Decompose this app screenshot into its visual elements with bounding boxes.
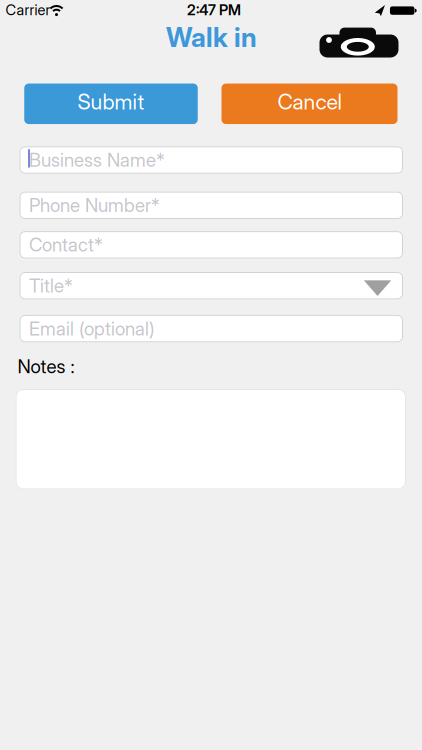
staticText: Carrier (5, 1, 50, 19)
staticText: 2:47 PM (187, 1, 241, 19)
staticText: Email (optional) (29, 317, 155, 340)
button[interactable]: Contact* (19, 231, 403, 258)
staticText: Title* (29, 274, 73, 297)
button[interactable]: Cancel (221, 83, 397, 124)
button[interactable]: Email (optional) (19, 315, 403, 342)
staticText: Contact* (29, 233, 103, 256)
staticText: Submit (77, 89, 144, 115)
button[interactable]: Phone Number* (19, 192, 403, 219)
staticText: Phone Number* (29, 194, 160, 217)
button[interactable]: Submit (24, 83, 198, 124)
button[interactable] (15, 389, 406, 489)
staticText: Walk in (166, 21, 257, 53)
button[interactable]: Title* (19, 272, 403, 299)
staticText: Cancel (277, 89, 341, 115)
staticText: Business Name* (29, 149, 165, 171)
staticText: Notes : (17, 355, 74, 378)
button[interactable] (0, 0, 422, 66)
button[interactable]: Business Name* (19, 146, 403, 174)
